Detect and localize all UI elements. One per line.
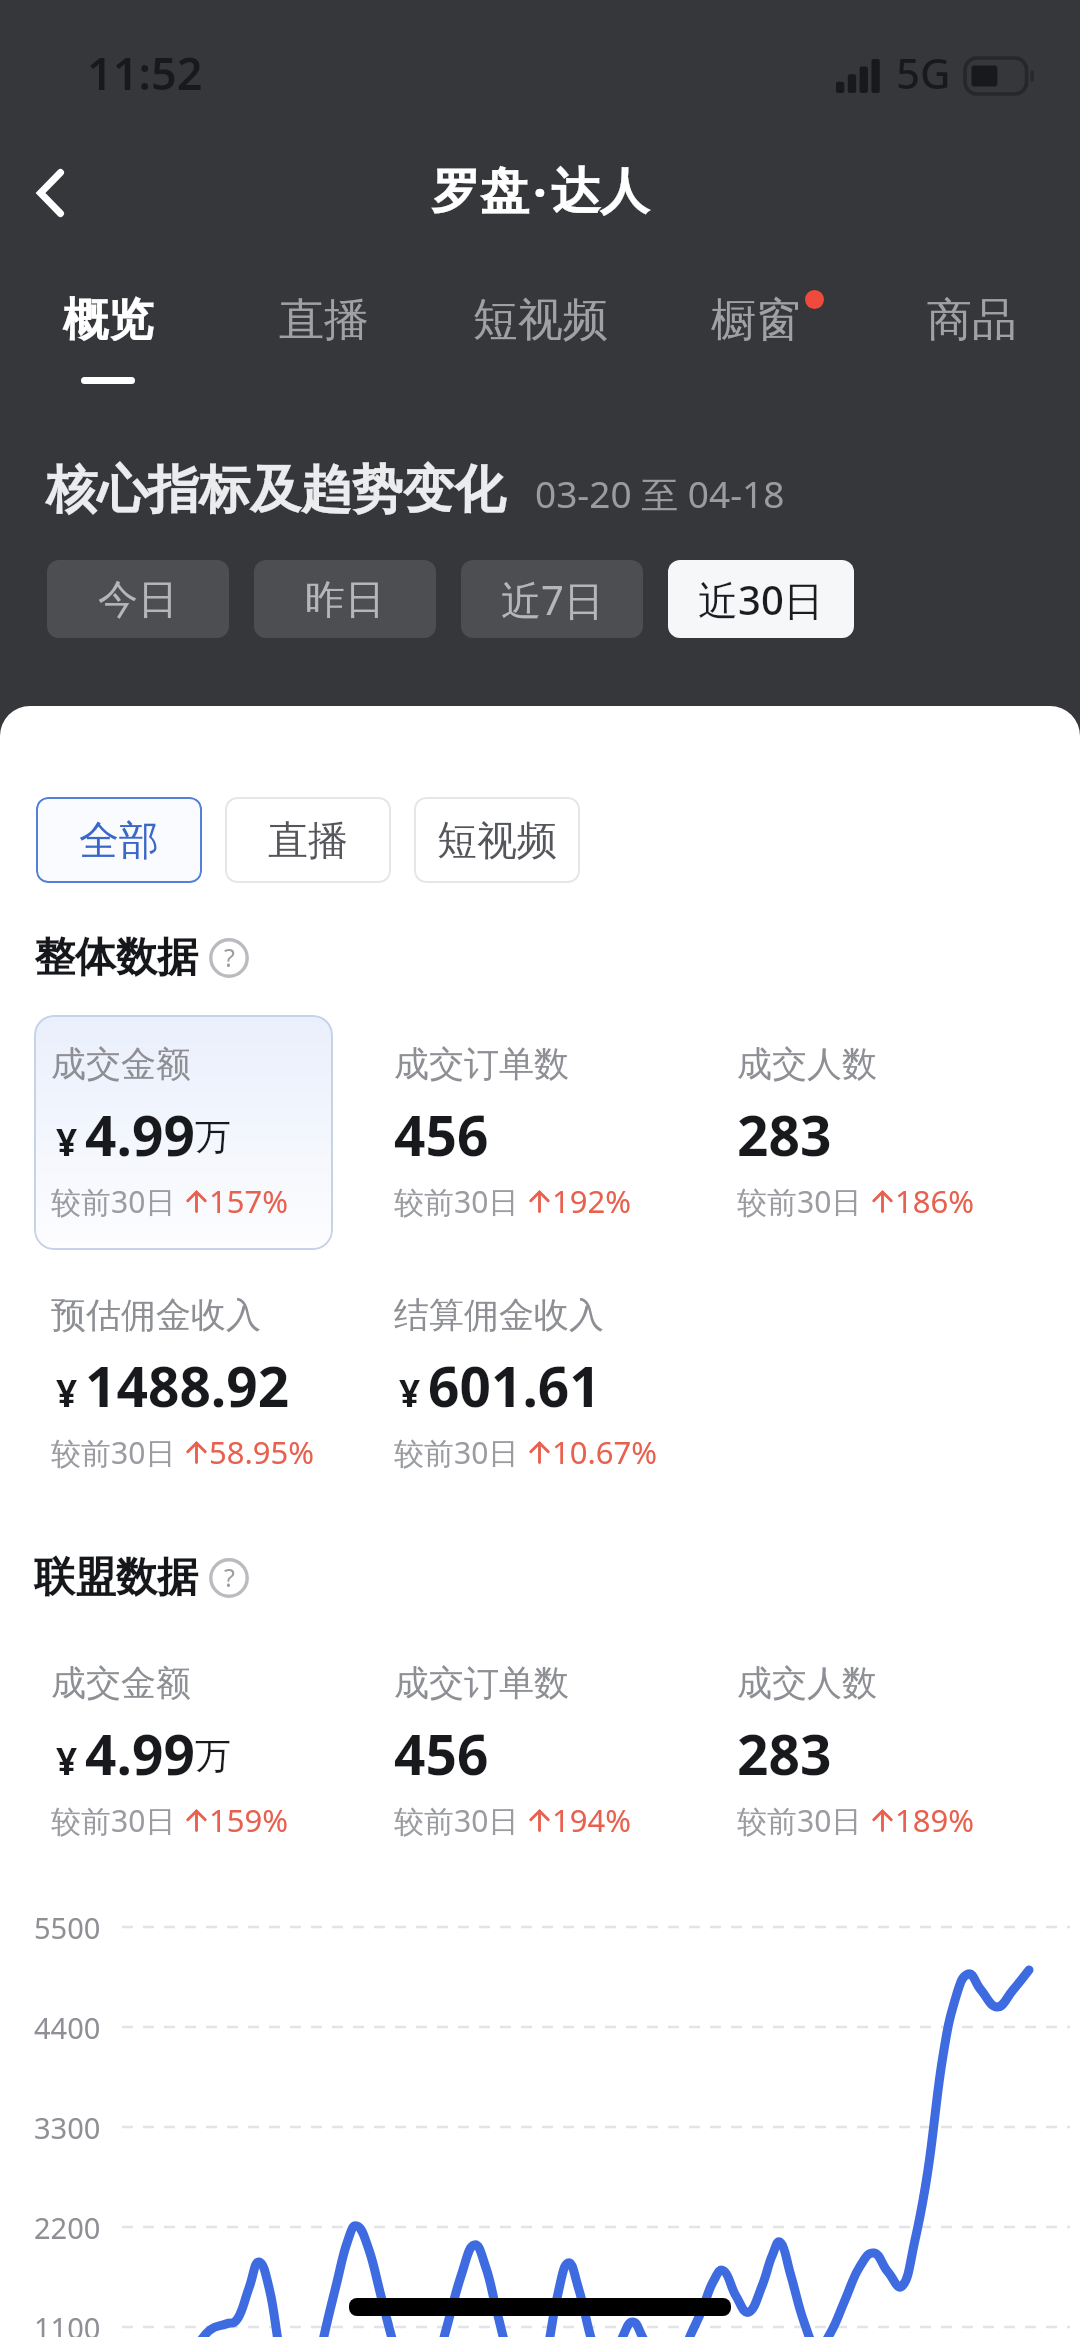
staticText: 283 [737, 1097, 832, 1168]
staticText: 达人 [551, 161, 649, 223]
button[interactable]: 成交金额 [51, 1042, 337, 1222]
staticText: · [533, 158, 547, 225]
staticText: ¥ [56, 1367, 78, 1417]
button[interactable]: Help [209, 938, 249, 978]
staticText: 较前30日 [737, 1800, 862, 1841]
button[interactable]: 商品 [864, 292, 1080, 412]
staticText: 今日 [98, 574, 178, 624]
staticText: 橱窗 [711, 292, 801, 349]
staticText: 较前30日 [737, 1181, 862, 1222]
staticText: 短视频 [473, 292, 608, 349]
staticText: 预估佣金收入 [51, 1293, 261, 1337]
button[interactable]: 橱窗 [648, 292, 864, 412]
button[interactable]: 短视频 [414, 797, 580, 883]
staticText: 3300 [34, 2108, 101, 2147]
staticText: 成交人数 [737, 1042, 877, 1086]
button[interactable]: 近7日 [461, 560, 643, 638]
staticText: 186% [895, 1180, 974, 1222]
staticText: 结算佣金收入 [394, 1293, 604, 1337]
staticText: 1488.92 [85, 1348, 290, 1419]
staticText: 罗盘 [431, 161, 529, 223]
staticText: 成交金额 [51, 1661, 191, 1705]
staticText: 2200 [34, 2208, 101, 2247]
button[interactable]: 成交金额 [51, 1661, 337, 1841]
staticText: 近30日 [698, 572, 824, 627]
staticText: 4.99 [85, 1097, 195, 1168]
staticText: 全部 [79, 815, 159, 865]
staticText: 157% [209, 1180, 288, 1222]
staticText: 601.61 [428, 1348, 601, 1419]
button[interactable]: 今日 [47, 560, 229, 638]
staticText: 5500 [34, 1908, 101, 1947]
button[interactable]: 预估佣金收入 [51, 1293, 337, 1473]
staticText: 成交金额 [51, 1042, 191, 1086]
staticText: 概览 [63, 292, 153, 349]
staticText: 昨日 [305, 574, 385, 624]
button[interactable]: Help [209, 1558, 249, 1598]
staticText: 159% [209, 1799, 288, 1841]
staticText: 较前30日 [51, 1181, 176, 1222]
staticText: 4.99 [85, 1716, 195, 1787]
button[interactable]: Back [5, 148, 95, 238]
staticText: ¥ [56, 1116, 78, 1166]
staticText: 较前30日 [394, 1432, 519, 1473]
button[interactable]: 成交订单数 [394, 1042, 680, 1222]
staticText: 万 [195, 1733, 231, 1778]
staticText: 11:52 [87, 42, 203, 103]
staticText: 4400 [34, 2008, 101, 2047]
button[interactable]: 成交订单数 [394, 1661, 680, 1841]
button[interactable]: 概览 [0, 292, 216, 412]
button[interactable] [34, 1015, 333, 1250]
staticText: 58.95% [209, 1431, 314, 1473]
button[interactable]: 短视频 [432, 292, 648, 412]
staticText: 03-20 至 04-18 [535, 468, 785, 519]
staticText: 194% [552, 1799, 631, 1841]
staticText: ? [224, 940, 235, 974]
staticText: ¥ [56, 1735, 78, 1785]
staticText: 283 [737, 1716, 832, 1787]
staticText: 成交人数 [737, 1661, 877, 1705]
staticText: 近7日 [501, 572, 604, 627]
button[interactable]: 全部 [36, 797, 202, 883]
staticText: ? [224, 1560, 235, 1594]
staticText: 直播 [268, 815, 348, 865]
staticText: 较前30日 [394, 1181, 519, 1222]
staticText: 456 [394, 1716, 489, 1787]
staticText: 成交订单数 [394, 1661, 569, 1705]
staticText: 较前30日 [51, 1800, 176, 1841]
staticText: 短视频 [437, 815, 557, 865]
button[interactable]: 成交人数 [737, 1042, 1023, 1222]
staticText: 联盟数据 [34, 1552, 198, 1604]
staticText: 192% [552, 1180, 631, 1222]
button[interactable]: 结算佣金收入 [394, 1293, 680, 1473]
staticText: ¥ [399, 1367, 421, 1417]
staticText: 456 [394, 1097, 489, 1168]
staticText: 较前30日 [394, 1800, 519, 1841]
staticText: 成交订单数 [394, 1042, 569, 1086]
staticText: 10.67% [552, 1431, 657, 1473]
staticText: 商品 [927, 292, 1017, 349]
button[interactable]: 直播 [225, 797, 391, 883]
staticText: 5G [896, 44, 951, 101]
staticText: 189% [895, 1799, 974, 1841]
button[interactable]: 近30日 [668, 560, 854, 638]
button[interactable]: 成交人数 [737, 1661, 1023, 1841]
button[interactable]: 昨日 [254, 560, 436, 638]
staticText: 万 [195, 1114, 231, 1159]
button[interactable]: 直播 [216, 292, 432, 412]
staticText: 整体数据 [34, 932, 198, 984]
staticText: 核心指标及趋势变化 [46, 458, 505, 522]
staticText: 1100 [34, 2308, 101, 2337]
staticText: 较前30日 [51, 1432, 176, 1473]
staticText: 直播 [279, 292, 369, 349]
